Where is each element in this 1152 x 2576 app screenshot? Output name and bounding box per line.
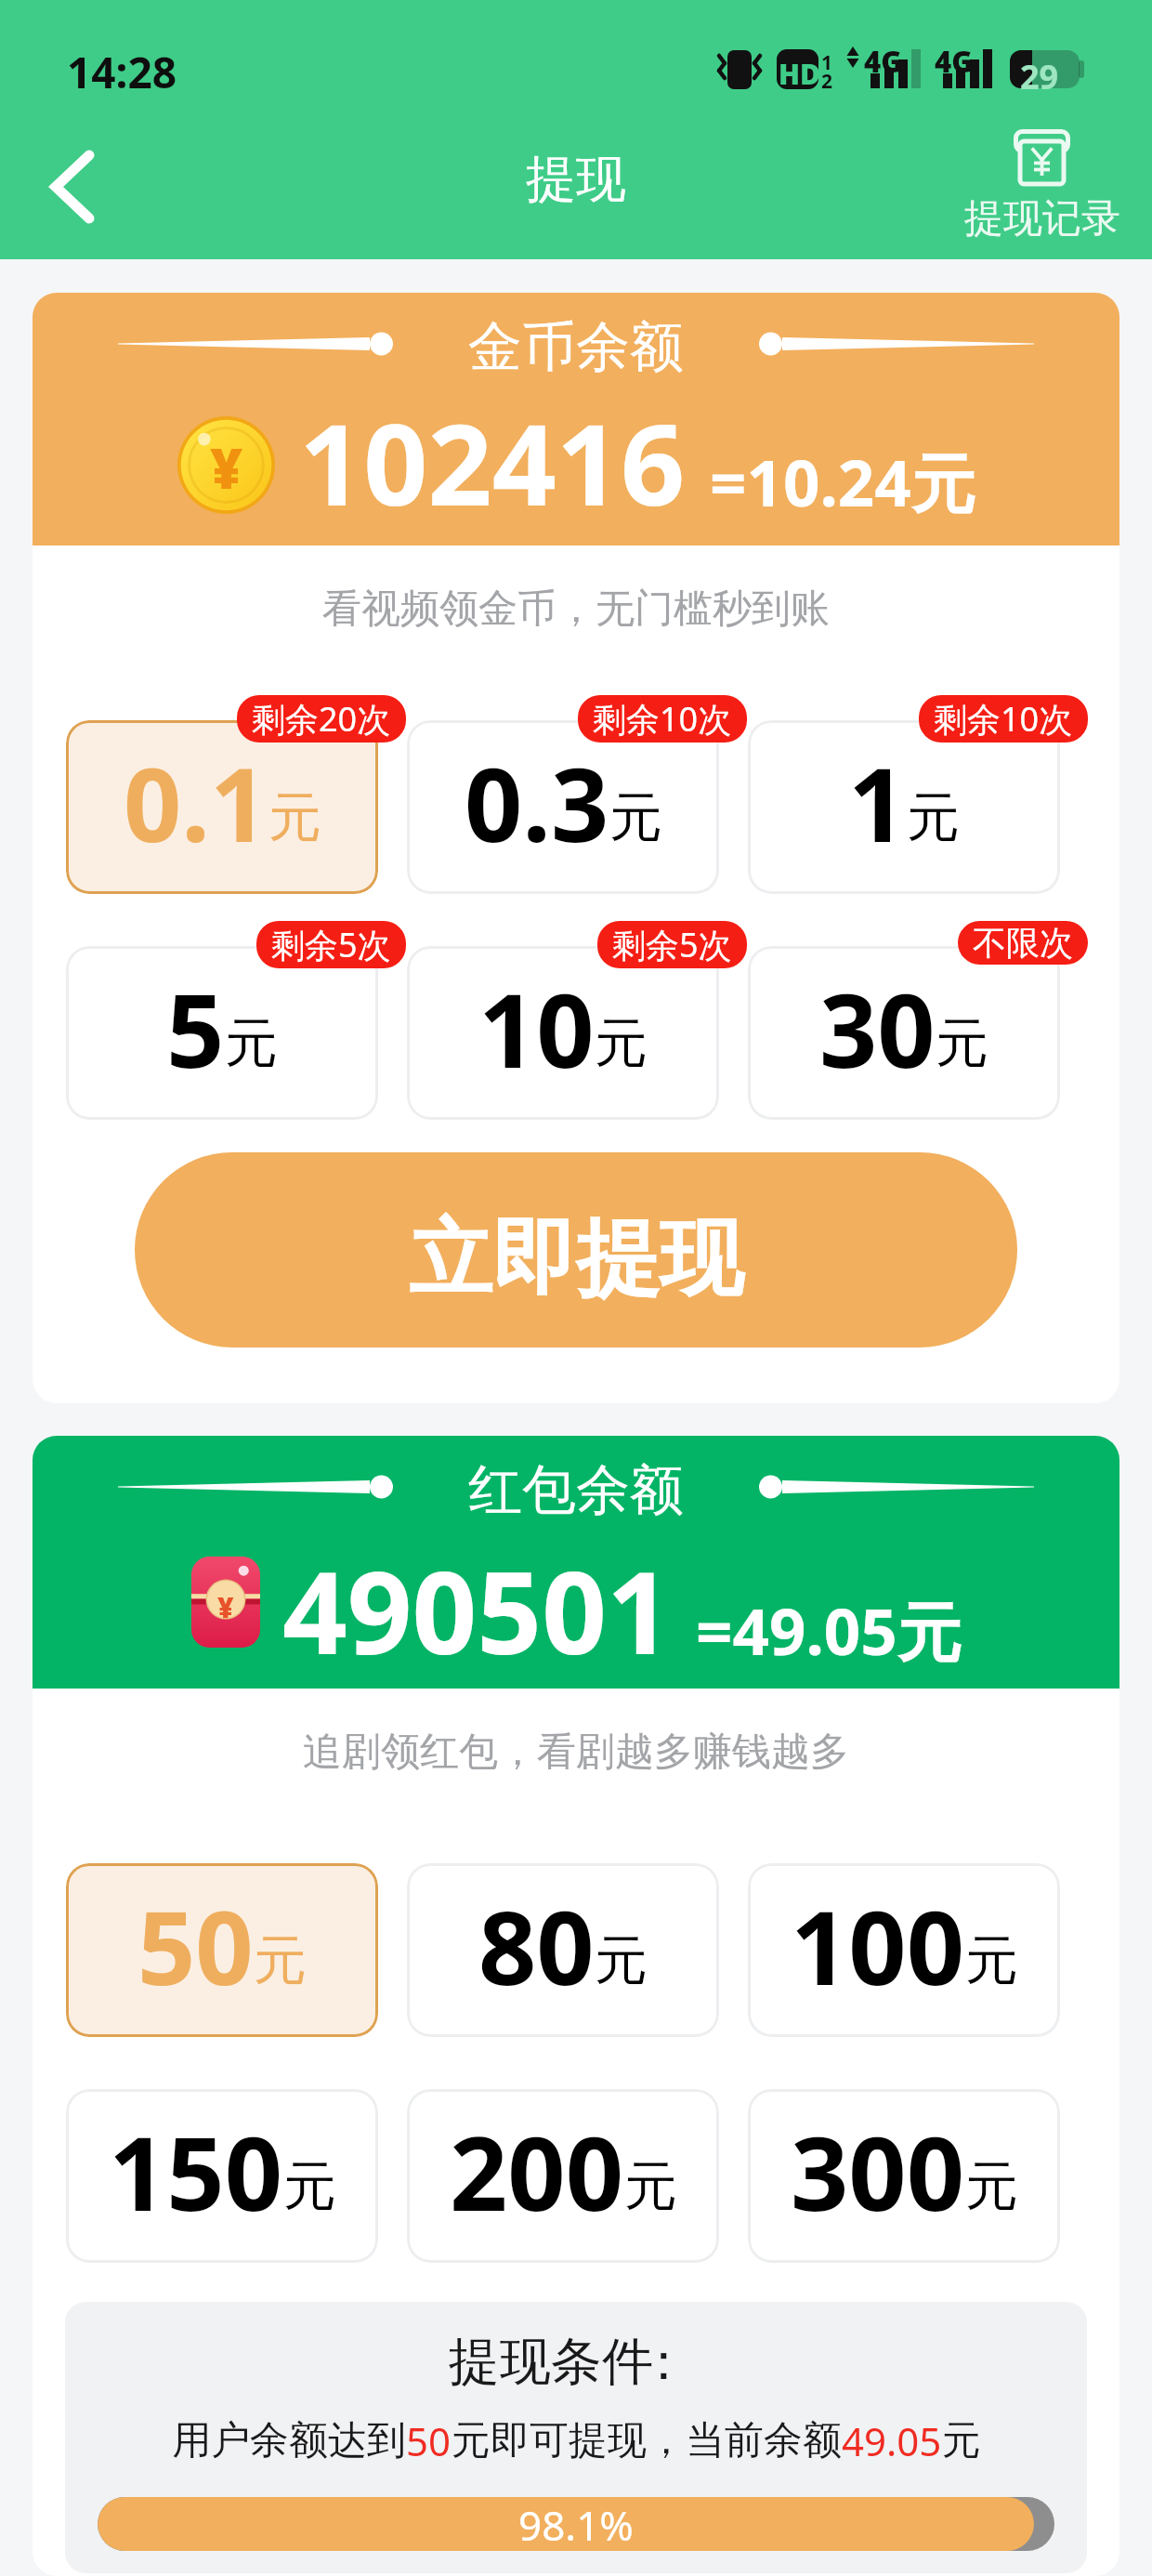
staticText: 提现条件 xyxy=(449,2330,653,2394)
staticText: 元 xyxy=(942,2416,981,2465)
staticText: 10 xyxy=(478,959,595,1097)
staticText: ： xyxy=(638,2330,689,2394)
staticText: 元 xyxy=(624,2153,677,2220)
staticText: 元即可提现，当前余额 xyxy=(452,2416,842,2465)
staticText: 红包余额 xyxy=(468,1456,684,1524)
staticText: 50 xyxy=(137,1876,254,2014)
staticText: 102416 xyxy=(299,386,686,539)
button[interactable]: 100 xyxy=(748,1863,1060,2037)
staticText: 1 xyxy=(821,49,833,76)
staticText: 剩余20次 xyxy=(252,696,391,742)
staticText: 元 xyxy=(283,2153,336,2220)
staticText: 元 xyxy=(965,1927,1018,1994)
staticText: 剩余5次 xyxy=(612,922,732,967)
button[interactable]: 提现记录 xyxy=(957,125,1128,247)
staticText: 元 xyxy=(268,784,321,851)
staticText: 0.3 xyxy=(465,733,609,871)
staticText: 剩余10次 xyxy=(934,696,1073,742)
staticText: HD xyxy=(779,55,820,93)
button[interactable]: Back xyxy=(20,136,123,238)
staticText: 元 xyxy=(595,1010,648,1077)
staticText: 14:28 xyxy=(67,43,177,101)
staticText: 2 xyxy=(821,68,833,95)
button[interactable]: 10 xyxy=(407,946,719,1120)
staticText: 看视频领金币，无门槛秒到账 xyxy=(33,585,1119,634)
staticText: 元 xyxy=(595,1927,648,1994)
staticText: 100 xyxy=(791,1876,965,2014)
staticText: 元 xyxy=(225,1010,278,1077)
staticText: 200 xyxy=(450,2102,624,2240)
staticText: =10.24元 xyxy=(710,438,975,525)
staticText: 150 xyxy=(109,2102,283,2240)
staticText: 29 xyxy=(1020,54,1059,99)
staticText: 提现 xyxy=(526,148,626,211)
button[interactable]: 150 xyxy=(66,2089,378,2263)
staticText: 490501 xyxy=(282,1533,672,1688)
staticText: 元 xyxy=(254,1927,307,1994)
button[interactable]: 300 xyxy=(748,2089,1060,2263)
staticText: 5 xyxy=(166,959,225,1097)
staticText: 50 xyxy=(406,2414,452,2467)
staticText: ¥ xyxy=(210,429,243,506)
staticText: 49.05 xyxy=(842,2414,942,2467)
staticText: 元 xyxy=(936,1010,988,1077)
staticText: 元 xyxy=(907,784,960,851)
staticText: 提现记录 xyxy=(964,194,1120,243)
staticText: 元 xyxy=(965,2153,1018,2220)
staticText: 追剧领红包，看剧越多赚钱越多 xyxy=(33,1728,1119,1777)
staticText: 剩余10次 xyxy=(593,696,732,742)
button[interactable]: 30 xyxy=(748,946,1060,1120)
staticText: ¥ xyxy=(217,1588,234,1626)
button[interactable]: 5 xyxy=(66,946,378,1120)
button[interactable]: 0.3 xyxy=(407,720,719,894)
staticText: 4G xyxy=(935,42,974,81)
staticText: 98.1% xyxy=(518,2497,634,2551)
staticText: 80 xyxy=(478,1876,595,2014)
staticText: 300 xyxy=(791,2102,965,2240)
staticText: =49.05元 xyxy=(696,1586,962,1674)
staticText: 用户余额达到 xyxy=(172,2416,406,2465)
staticText: 立即提现 xyxy=(409,1206,743,1311)
button[interactable]: 80 xyxy=(407,1863,719,2037)
button[interactable]: 50 xyxy=(66,1863,378,2037)
button[interactable]: 1 xyxy=(748,720,1060,894)
button[interactable]: 0.1 xyxy=(66,720,378,894)
button[interactable]: 200 xyxy=(407,2089,719,2263)
staticText: 30 xyxy=(819,959,936,1097)
staticText: 1 xyxy=(848,733,907,871)
button[interactable]: 立即提现 xyxy=(135,1152,1017,1347)
staticText: 金币余额 xyxy=(468,313,684,381)
staticText: 元 xyxy=(609,784,662,851)
staticText: 剩余5次 xyxy=(271,922,391,967)
staticText: 0.1 xyxy=(124,733,268,871)
staticText: 不限次 xyxy=(973,922,1073,964)
staticText: 4G xyxy=(864,42,903,81)
